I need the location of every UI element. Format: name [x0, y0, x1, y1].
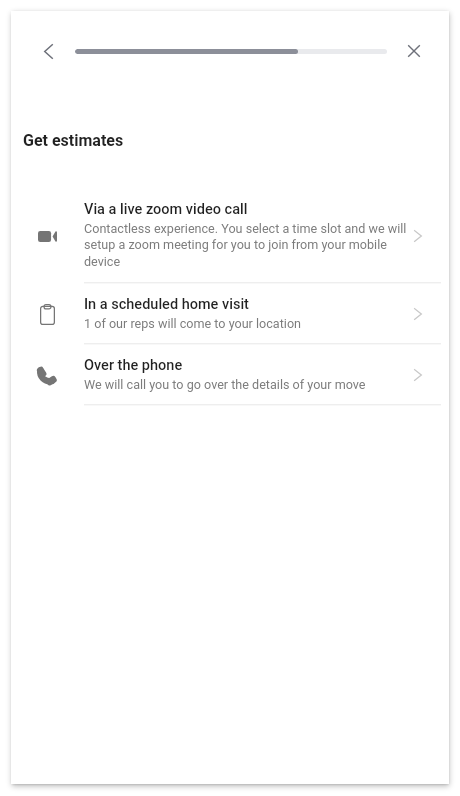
- button[interactable]: Over the phone: [11, 345, 449, 406]
- staticText: Contactless experience. You select a tim…: [84, 221, 411, 270]
- staticText: Get estimates: [23, 131, 124, 150]
- staticText: In a scheduled home visit: [84, 296, 249, 313]
- button[interactable]: In a scheduled home visit: [11, 284, 449, 345]
- staticText: We will call you to go over the details …: [84, 377, 366, 392]
- staticText: 1 of our reps will come to your location: [84, 316, 302, 331]
- button[interactable]: Close: [400, 39, 428, 63]
- button[interactable]: Via a live zoom video call: [11, 189, 449, 284]
- staticText: Via a live zoom video call: [84, 201, 248, 218]
- staticText: Over the phone: [84, 357, 183, 374]
- button[interactable]: Back: [34, 39, 62, 63]
